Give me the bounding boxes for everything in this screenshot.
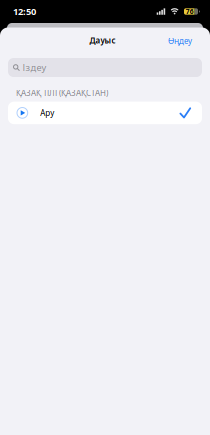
staticText: Өңдеу: [168, 36, 192, 46]
staticText: ҚАЗАҚ ТІЛІ (ҚАЗАҚСТАН): [16, 87, 108, 98]
staticText: Дауыс: [89, 35, 115, 46]
staticText: 12:50: [13, 5, 36, 18]
button[interactable]: Play sample: [16, 107, 28, 119]
button[interactable]: Өңдеу: [168, 36, 192, 47]
staticText: 76: [186, 7, 194, 16]
button[interactable]: Іздеу: [8, 58, 202, 77]
button[interactable]: Ару: [8, 102, 202, 124]
staticText: Іздеу: [23, 61, 47, 74]
staticText: Ару: [40, 108, 54, 118]
